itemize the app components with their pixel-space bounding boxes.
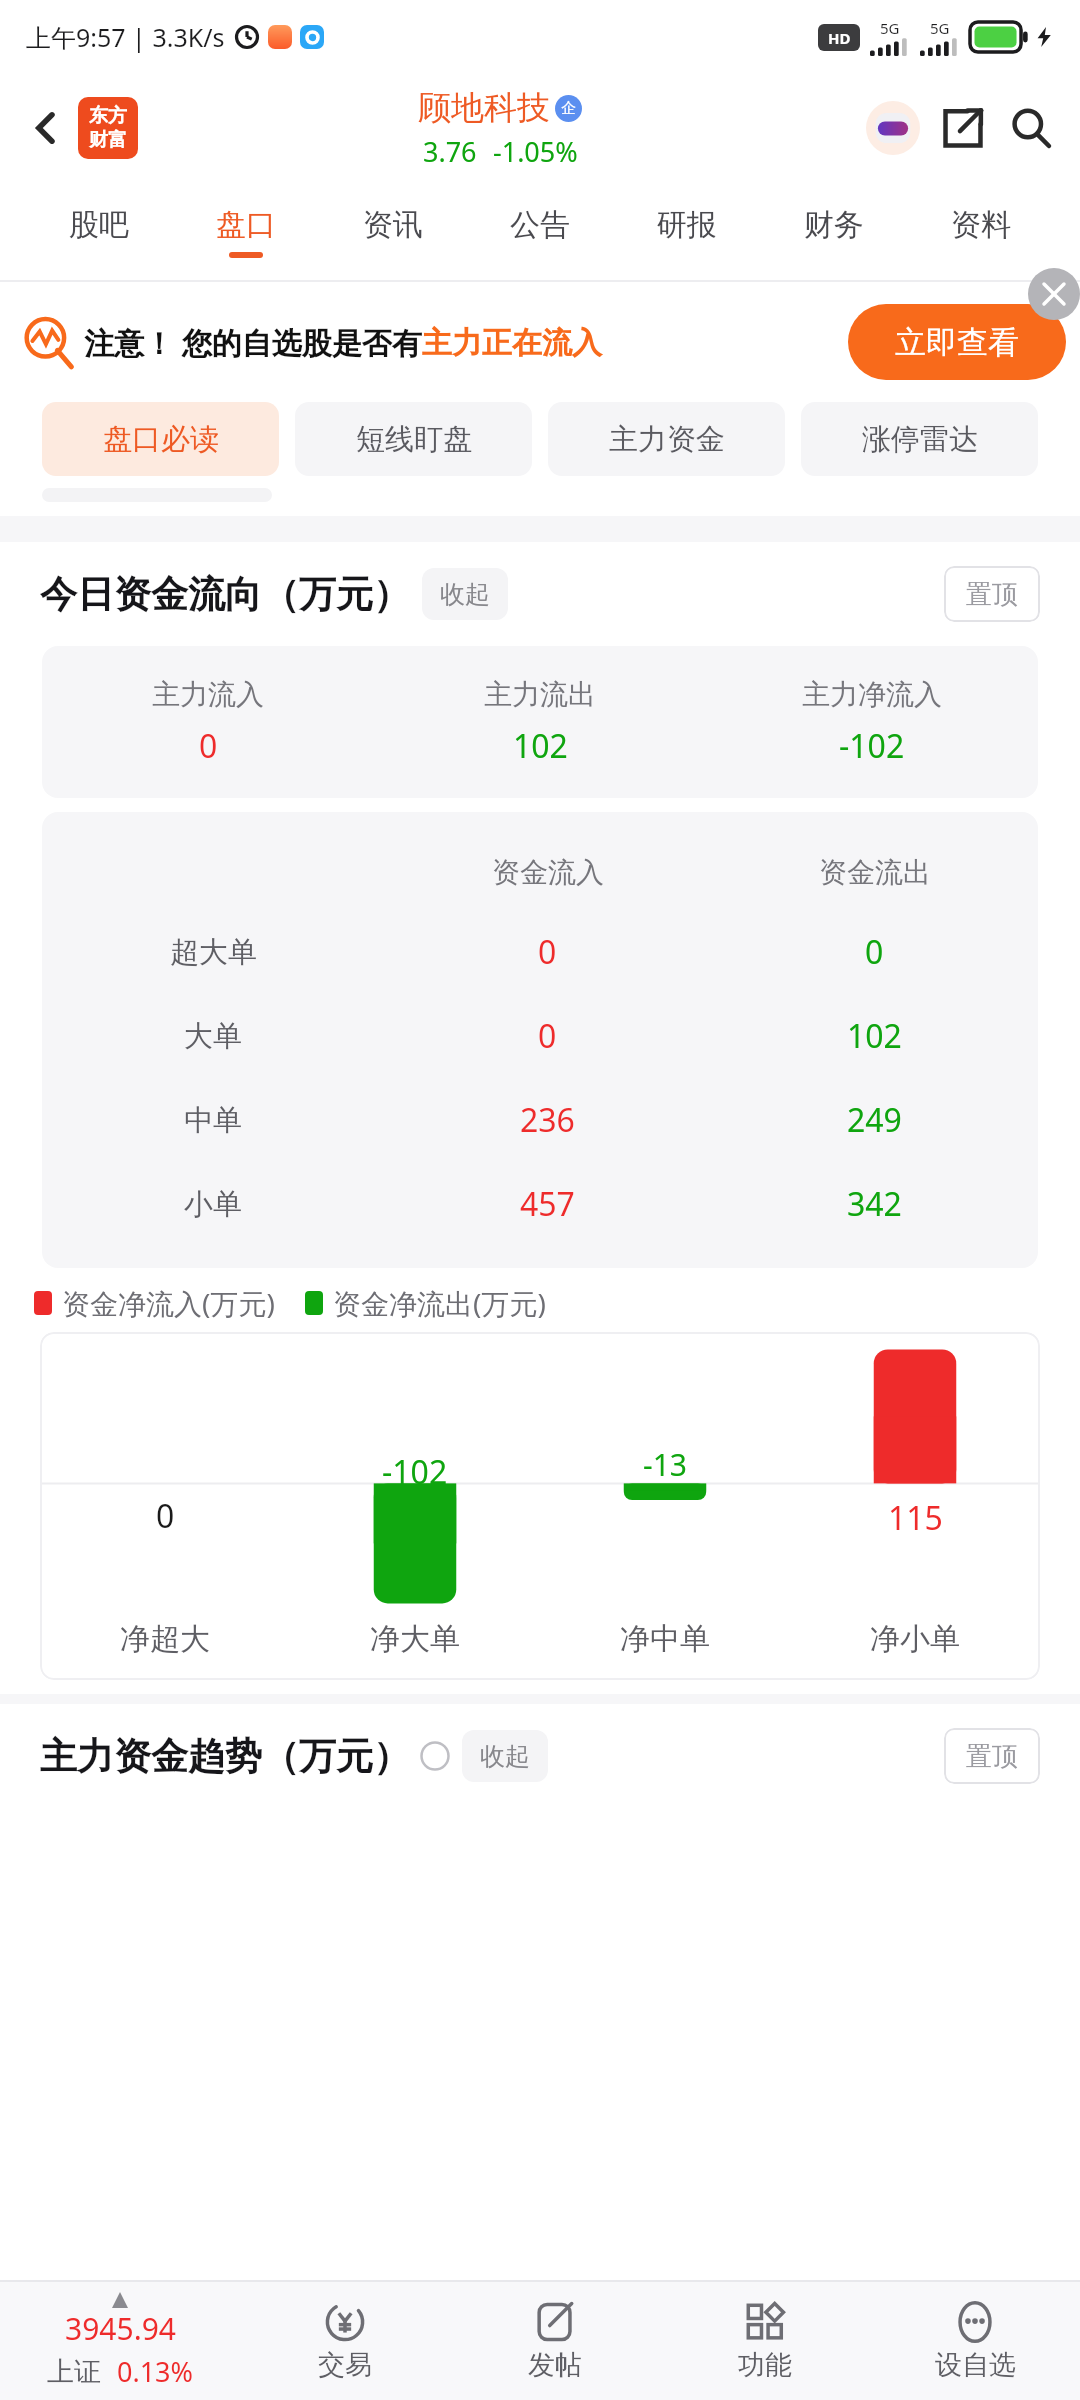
staticText: 财富 [89, 128, 127, 152]
staticText: 资料 [951, 206, 1011, 244]
staticText: 盘口 [216, 206, 276, 244]
staticText: 置顶 [966, 578, 1018, 611]
button[interactable]: 返回 [18, 100, 74, 156]
staticText: 0 [865, 930, 884, 974]
staticText: 企 [561, 99, 576, 118]
button[interactable]: 收起 [462, 1730, 548, 1782]
staticText: 净超大 [120, 1620, 210, 1658]
button[interactable]: 涨停雷达 [801, 402, 1038, 476]
button[interactable]: 功能 [660, 2282, 870, 2400]
button[interactable]: 置顶 [944, 1728, 1040, 1784]
staticText: 主力资金趋势（万元） [40, 1733, 410, 1780]
button[interactable]: 收起 [422, 568, 508, 620]
button[interactable]: 盘口 [172, 182, 319, 282]
staticText: 115 [888, 1496, 943, 1540]
staticText: 资讯 [363, 206, 423, 244]
staticText: 涨停雷达 [862, 421, 978, 458]
staticText: 457 [520, 1182, 575, 1226]
staticText: 资金净流入(万元) [62, 1284, 275, 1322]
button[interactable]: 财务 [760, 182, 907, 282]
button[interactable]: 短线盯盘 [295, 402, 532, 476]
staticText: 设自选 [935, 2348, 1016, 2382]
staticText: 102 [513, 724, 568, 768]
staticText: 股吧 [69, 206, 129, 244]
staticText: 功能 [738, 2348, 792, 2382]
staticText: 短线盯盘 [356, 421, 472, 458]
staticText: 342 [847, 1182, 902, 1226]
staticText: 大单 [184, 1018, 242, 1055]
staticText: 东方 [89, 104, 127, 128]
staticText: 立即查看 [895, 323, 1019, 362]
staticText: -1.05% [493, 133, 578, 170]
staticText: -102 [382, 1450, 448, 1494]
staticText: 净小单 [870, 1620, 960, 1658]
staticText: HD [828, 28, 851, 48]
button[interactable]: 发帖 [450, 2282, 660, 2400]
staticText: 中单 [184, 1102, 242, 1139]
staticText: 主力净流入 [802, 677, 942, 712]
staticText: 主力资金 [609, 421, 725, 458]
staticText: 资金净流出(万元) [333, 1284, 546, 1322]
button[interactable]: 资金流入 [42, 834, 1038, 1246]
staticText: 净中单 [620, 1620, 710, 1658]
staticText: 财务 [804, 206, 864, 244]
button[interactable]: 东方财富 [78, 97, 138, 159]
button[interactable]: 研报 [613, 182, 760, 282]
staticText: 5G [930, 18, 950, 38]
staticText: 上证 [47, 2355, 101, 2389]
staticText: -13 [643, 1444, 687, 1485]
staticText: 236 [520, 1098, 575, 1142]
staticText: 收起 [480, 1741, 530, 1772]
staticText: 0.13% [117, 2353, 194, 2390]
staticText: 0 [538, 930, 557, 974]
button[interactable]: 盘口必读 [42, 402, 279, 476]
button[interactable]: 资讯 [319, 182, 466, 282]
staticText: 0 [538, 1014, 557, 1058]
button[interactable]: 立即查看 [848, 304, 1066, 380]
staticText: 主力流入 [152, 677, 264, 712]
staticText: 今日资金流向（万元） [40, 571, 410, 618]
button[interactable]: 资料 [907, 182, 1054, 282]
staticText: 公告 [510, 206, 570, 244]
staticText: 3945.94 [65, 2308, 176, 2349]
button[interactable]: 交易 [240, 2282, 450, 2400]
staticText: 交易 [318, 2348, 372, 2382]
staticText: 主力流出 [484, 677, 596, 712]
staticText: -102 [839, 724, 905, 768]
staticText: 发帖 [528, 2348, 582, 2382]
staticText: 盘口必读 [103, 421, 219, 458]
button[interactable]: 搜索 [1000, 97, 1062, 159]
button[interactable]: AI助手 [862, 97, 924, 159]
staticText: 资金流出 [819, 855, 931, 890]
staticText: 收起 [440, 579, 490, 610]
button[interactable]: 股吧 [26, 182, 172, 282]
staticText: 超大单 [170, 934, 257, 971]
button[interactable]: 公告 [466, 182, 613, 282]
staticText: 注意！ 您的自选股是否有 [84, 322, 422, 363]
staticText: 0 [156, 1494, 175, 1538]
button[interactable]: 0 [40, 1332, 1040, 1680]
staticText: 顾地科技 [418, 87, 550, 129]
button[interactable]: 主力流入 [42, 646, 1038, 798]
button[interactable]: 主力资金 [548, 402, 785, 476]
staticText: 净大单 [370, 1620, 460, 1658]
staticText: 置顶 [966, 1740, 1018, 1773]
button[interactable]: 设自选 [870, 2282, 1080, 2400]
staticText: 主力正在流入 [422, 324, 602, 362]
staticText: 5G [880, 18, 900, 38]
staticText: 资金流入 [492, 855, 604, 890]
button[interactable]: 置顶 [944, 566, 1040, 622]
staticText: 0 [199, 724, 218, 768]
button[interactable]: 分享 [932, 97, 994, 159]
button[interactable]: 3945.94 [0, 2292, 240, 2390]
staticText: 102 [847, 1014, 902, 1058]
staticText: 3.76 [423, 133, 477, 170]
staticText: 小单 [184, 1186, 242, 1223]
staticText: 研报 [657, 206, 717, 244]
staticText: 上午9:57 | 3.3K/s [26, 20, 225, 54]
staticText: 249 [847, 1098, 902, 1142]
button[interactable]: 关闭 [1028, 268, 1080, 320]
